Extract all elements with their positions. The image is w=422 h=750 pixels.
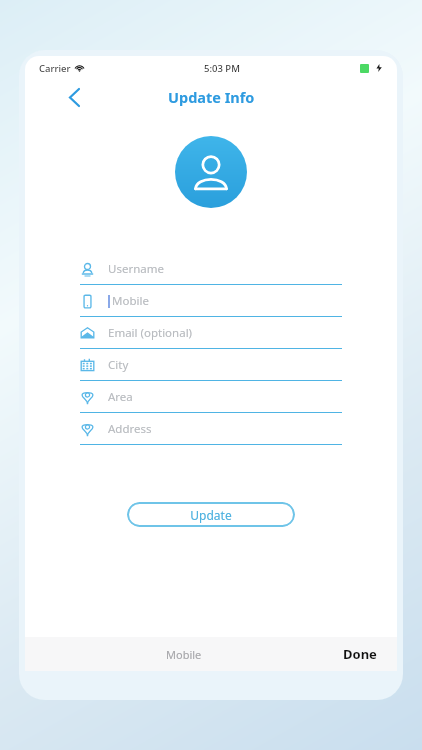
- staticText: Update: [190, 507, 232, 523]
- staticText: Address: [108, 421, 152, 437]
- button[interactable]: Username: [80, 254, 342, 286]
- staticText: Area: [108, 389, 133, 405]
- button[interactable]: Back: [59, 82, 89, 112]
- staticText: Username: [108, 261, 164, 277]
- staticText: 5:03 PM: [204, 62, 240, 75]
- staticText: Mobile: [166, 647, 202, 662]
- button[interactable]: Email (optional): [80, 318, 342, 350]
- staticText: Email (optional): [108, 325, 193, 341]
- button[interactable]: Update: [127, 502, 295, 527]
- button[interactable]: Mobile: [80, 286, 342, 318]
- staticText: Mobile: [112, 293, 149, 309]
- button[interactable]: Profile photo: [175, 136, 247, 208]
- staticText: Done: [343, 645, 377, 663]
- staticText: Update Info: [168, 87, 255, 107]
- button[interactable]: City: [80, 350, 342, 382]
- staticText: Carrier: [39, 62, 71, 75]
- button[interactable]: Done: [343, 645, 397, 663]
- button[interactable]: Address: [80, 414, 342, 446]
- staticText: City: [108, 357, 129, 373]
- button[interactable]: Area: [80, 382, 342, 414]
